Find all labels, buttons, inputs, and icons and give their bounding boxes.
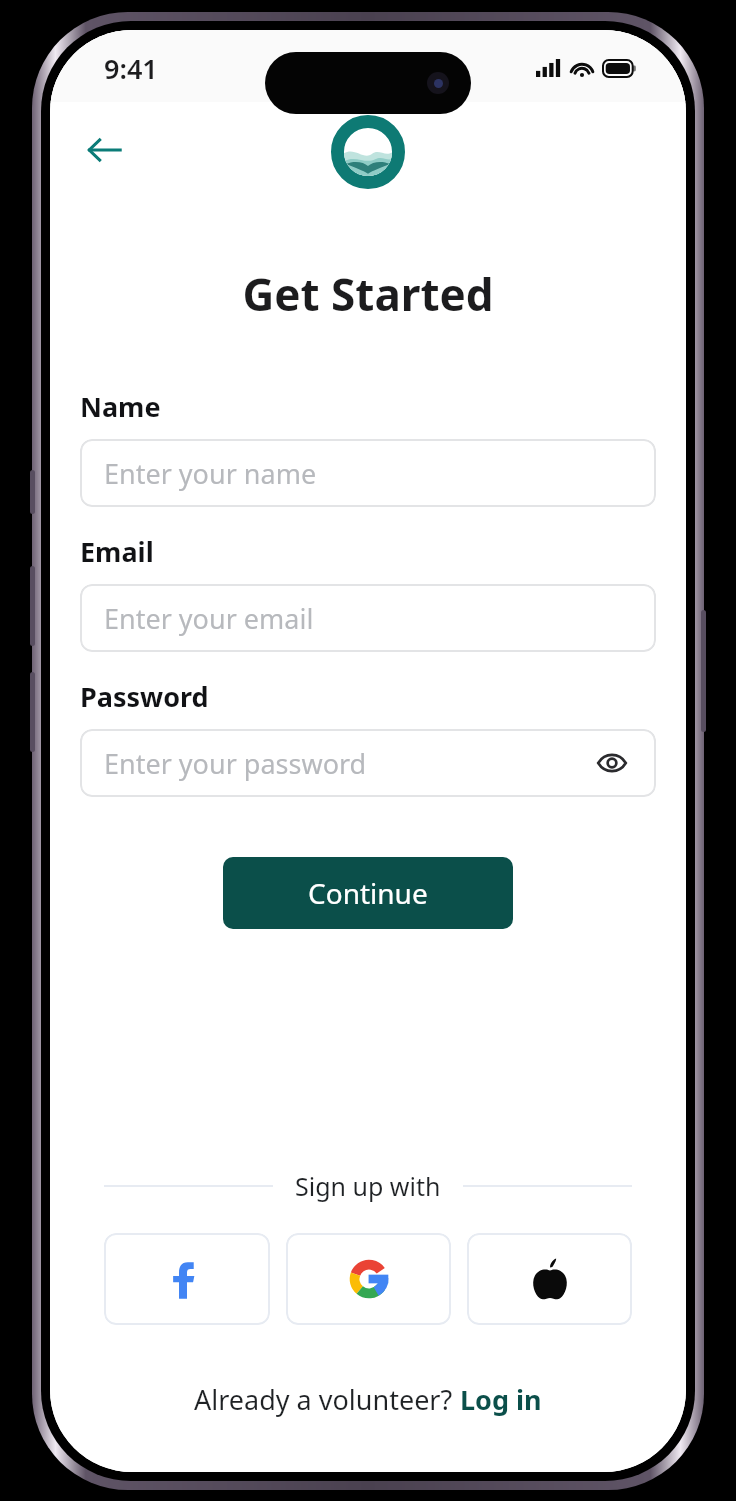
staticText: Continue	[308, 874, 428, 912]
staticText: Enter your name	[104, 455, 317, 492]
button[interactable]: Show password	[590, 741, 634, 785]
staticText: Name	[80, 388, 161, 425]
button[interactable]: Enter your email	[80, 584, 656, 652]
button[interactable]: Back	[74, 120, 134, 180]
staticText: Get Started	[50, 264, 686, 324]
staticText: Log in	[460, 1381, 542, 1418]
button[interactable]: Enter your name	[80, 439, 656, 507]
staticText: Email	[80, 533, 154, 570]
staticText: Enter your email	[104, 600, 314, 637]
button[interactable]: Sign up with Apple	[467, 1233, 632, 1325]
staticText: Already a volunteer?	[194, 1381, 460, 1418]
button[interactable]: Already a volunteer?	[50, 1381, 686, 1418]
staticText: Password	[80, 678, 209, 715]
button[interactable]: Continue	[223, 857, 513, 929]
staticText: 9:41	[104, 50, 158, 87]
staticText: Enter your password	[104, 745, 367, 782]
staticText: Sign up with	[295, 1169, 441, 1203]
button[interactable]: Sign up with Facebook	[104, 1233, 270, 1325]
button[interactable]: Enter your password	[80, 729, 656, 797]
button[interactable]: Sign up with Google	[286, 1233, 451, 1325]
